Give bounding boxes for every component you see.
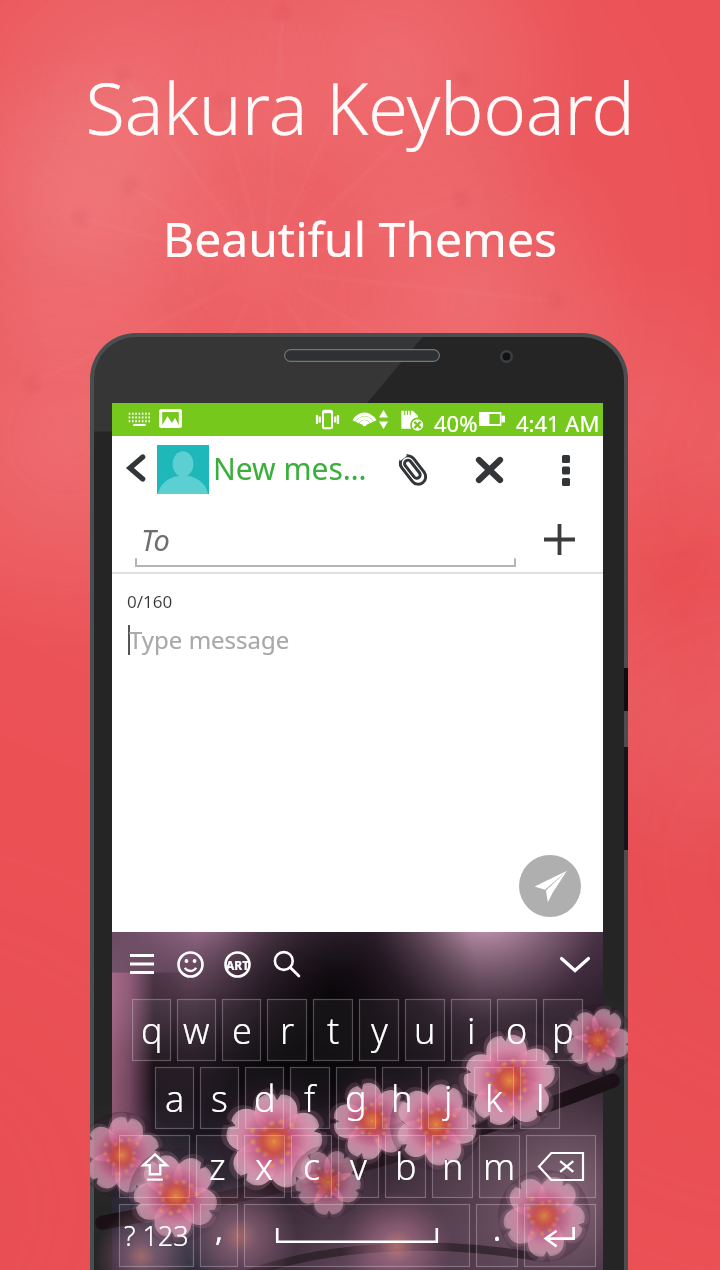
staticText: ? 123 [124, 1217, 189, 1254]
button[interactable]: a [155, 1067, 194, 1129]
staticText: y [371, 1006, 388, 1055]
button[interactable]: q [132, 999, 171, 1061]
staticText: 4:41 AM [516, 408, 600, 438]
button[interactable]: v [338, 1135, 379, 1198]
button[interactable]: t [313, 999, 353, 1061]
button[interactable]: f [290, 1067, 330, 1129]
staticText: New mes… [213, 448, 367, 489]
button[interactable]: Search [268, 944, 304, 984]
button[interactable] [524, 1204, 596, 1267]
staticText: w [183, 1006, 210, 1055]
button[interactable]: , [200, 1204, 238, 1267]
staticText: n [442, 1142, 464, 1191]
staticText: r [280, 1006, 295, 1055]
button[interactable]: z [196, 1135, 238, 1198]
button[interactable]: r [267, 999, 307, 1061]
staticText: c [303, 1142, 321, 1191]
button[interactable]: Add recipient [536, 515, 582, 563]
button[interactable] [244, 1204, 470, 1267]
button[interactable]: Back [116, 442, 156, 494]
staticText: o [506, 1006, 528, 1055]
button[interactable]: Emoji [172, 944, 208, 984]
button[interactable] [119, 1135, 190, 1198]
button[interactable]: m [479, 1135, 520, 1198]
button[interactable]: i [451, 999, 491, 1061]
button[interactable]: j [428, 1067, 468, 1129]
button[interactable]: y [359, 999, 399, 1061]
staticText: u [414, 1006, 436, 1055]
button[interactable]: d [245, 1067, 284, 1129]
button[interactable]: x [244, 1135, 285, 1198]
button[interactable]: e [222, 999, 261, 1061]
staticText: f [304, 1074, 316, 1123]
button[interactable]: u [405, 999, 445, 1061]
staticText: x [255, 1142, 274, 1191]
button[interactable]: Send [519, 855, 581, 917]
button[interactable]: . [476, 1204, 518, 1267]
button[interactable]: g [336, 1067, 376, 1129]
staticText: a [165, 1074, 185, 1123]
button[interactable]: o [497, 999, 537, 1061]
staticText: i [467, 1006, 476, 1055]
button[interactable]: Menu [124, 944, 160, 984]
staticText: t [327, 1006, 340, 1055]
staticText: ART [226, 957, 250, 973]
staticText: b [395, 1142, 417, 1191]
button[interactable]: More options [546, 445, 586, 495]
button[interactable]: b [385, 1135, 426, 1198]
staticText: z [209, 1142, 226, 1191]
staticText: v [350, 1142, 367, 1191]
staticText: , [215, 1209, 224, 1250]
button[interactable]: Art [219, 944, 255, 984]
button[interactable]: p [543, 999, 583, 1061]
button[interactable]: s [200, 1067, 239, 1129]
staticText: p [552, 1006, 574, 1055]
button[interactable]: c [291, 1135, 332, 1198]
button[interactable]: ? 123 [119, 1204, 194, 1267]
button[interactable]: h [382, 1067, 422, 1129]
staticText: l [536, 1074, 545, 1123]
button[interactable]: l [520, 1067, 560, 1129]
staticText: g [345, 1074, 367, 1123]
button[interactable]: Attach [390, 445, 436, 495]
button[interactable]: Close [466, 445, 512, 495]
staticText: To [141, 520, 170, 559]
staticText: q [141, 1006, 163, 1055]
staticText: d [254, 1074, 276, 1123]
button[interactable]: k [474, 1067, 514, 1129]
button[interactable]: Hide keyboard [555, 942, 595, 986]
staticText: h [391, 1074, 413, 1123]
button[interactable]: n [432, 1135, 473, 1198]
staticText: s [211, 1074, 228, 1123]
staticText: 40% [434, 408, 478, 438]
staticText: Sakura Keyboard [85, 58, 635, 156]
button[interactable]: w [177, 999, 216, 1061]
button[interactable] [526, 1135, 596, 1198]
staticText: k [485, 1074, 503, 1123]
staticText: Beautiful Themes [163, 206, 557, 271]
staticText: 0/160 [127, 590, 173, 613]
staticText: Type message [129, 623, 290, 656]
staticText: m [483, 1142, 516, 1191]
staticText: j [444, 1074, 453, 1123]
staticText: e [232, 1006, 252, 1055]
staticText: . [493, 1209, 502, 1250]
